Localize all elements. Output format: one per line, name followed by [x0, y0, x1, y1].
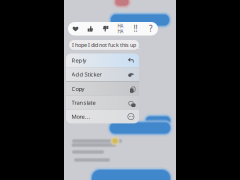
staticText: More...	[72, 113, 91, 120]
staticText: Add Sticker	[72, 70, 102, 78]
staticText: ?	[149, 23, 152, 34]
button[interactable]: Love	[68, 22, 83, 35]
button[interactable]: More...	[66, 110, 139, 123]
staticText: Translate	[72, 99, 96, 106]
staticText: Reply	[72, 56, 87, 64]
button[interactable]: Add Sticker	[66, 67, 139, 81]
button[interactable]: Like	[83, 22, 98, 35]
button[interactable]: Reply	[66, 53, 139, 67]
staticText: HA	[117, 23, 123, 29]
staticText: I hope I did not fuck this up	[72, 41, 136, 49]
staticText: !!	[133, 23, 137, 34]
button[interactable]: Question	[143, 22, 158, 35]
button[interactable]: Translate	[66, 96, 139, 109]
button[interactable]: Copy	[66, 82, 139, 95]
staticText: HA	[117, 28, 123, 34]
button[interactable]: Dislike	[98, 22, 113, 35]
button[interactable]: Exclamation	[128, 22, 143, 35]
button[interactable]: Haha	[113, 22, 128, 35]
staticText: Copy	[72, 85, 85, 93]
